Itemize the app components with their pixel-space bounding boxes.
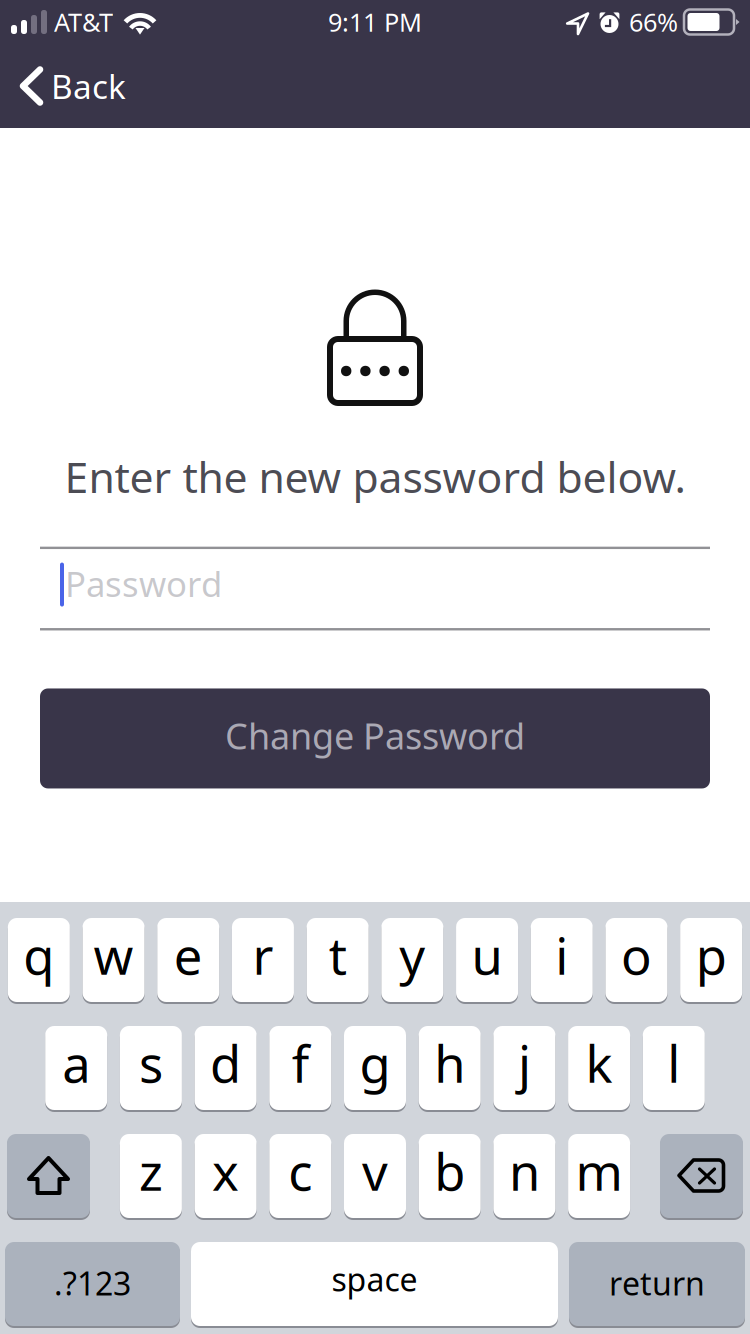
button[interactable]: z: [120, 1134, 182, 1220]
button[interactable]: space: [191, 1242, 558, 1328]
staticText: v: [362, 1137, 388, 1205]
staticText: q: [23, 921, 54, 989]
button[interactable]: i: [531, 918, 593, 1004]
staticText: AT&T: [54, 5, 113, 39]
staticText: j: [518, 1029, 531, 1097]
staticText: space: [331, 1258, 417, 1300]
button[interactable]: Shift: [7, 1134, 90, 1220]
button[interactable]: h: [419, 1026, 481, 1112]
staticText: b: [434, 1137, 465, 1205]
button[interactable]: x: [195, 1134, 257, 1220]
staticText: Change Password: [225, 712, 525, 759]
staticText: f: [292, 1029, 309, 1097]
button[interactable]: v: [344, 1134, 406, 1220]
staticText: d: [210, 1029, 241, 1097]
staticText: a: [62, 1029, 90, 1097]
button[interactable]: t: [307, 918, 369, 1004]
button[interactable]: o: [605, 918, 667, 1004]
button[interactable]: d: [195, 1026, 257, 1112]
button[interactable]: j: [493, 1026, 555, 1112]
staticText: 66%: [629, 5, 678, 39]
staticText: c: [288, 1137, 312, 1205]
button[interactable]: s: [120, 1026, 182, 1112]
staticText: t: [329, 921, 347, 989]
button[interactable]: Change Password: [40, 688, 710, 788]
button[interactable]: g: [344, 1026, 406, 1112]
staticText: 9:11 PM: [328, 5, 422, 39]
staticText: o: [621, 921, 652, 989]
staticText: u: [472, 921, 503, 989]
button[interactable]: return: [569, 1242, 745, 1328]
button[interactable]: u: [456, 918, 518, 1004]
button[interactable]: w: [83, 918, 145, 1004]
staticText: l: [667, 1029, 680, 1097]
staticText: g: [359, 1029, 390, 1097]
staticText: Enter the new password below.: [64, 448, 685, 505]
staticText: e: [174, 921, 203, 989]
button[interactable]: l: [643, 1026, 705, 1112]
staticText: w: [94, 921, 134, 989]
staticText: .?123: [54, 1262, 131, 1304]
button[interactable]: q: [8, 918, 70, 1004]
button[interactable]: a: [45, 1026, 107, 1112]
button[interactable]: e: [157, 918, 219, 1004]
staticText: k: [586, 1029, 613, 1097]
button[interactable]: Back: [0, 53, 148, 119]
button[interactable]: .?123: [5, 1242, 180, 1328]
staticText: Password: [65, 560, 222, 606]
staticText: x: [212, 1137, 239, 1205]
staticText: z: [139, 1137, 163, 1205]
button[interactable]: n: [493, 1134, 555, 1220]
button[interactable]: p: [680, 918, 742, 1004]
staticText: y: [399, 921, 425, 989]
button[interactable]: b: [419, 1134, 481, 1220]
button[interactable]: m: [568, 1134, 630, 1220]
button[interactable]: f: [269, 1026, 331, 1112]
button[interactable]: Delete: [660, 1134, 743, 1220]
button[interactable]: y: [381, 918, 443, 1004]
staticText: m: [576, 1137, 623, 1205]
staticText: return: [609, 1262, 705, 1304]
staticText: s: [139, 1029, 163, 1097]
button[interactable]: k: [568, 1026, 630, 1112]
staticText: r: [252, 921, 273, 989]
staticText: p: [696, 921, 727, 989]
button[interactable]: c: [269, 1134, 331, 1220]
button[interactable]: r: [232, 918, 294, 1004]
staticText: h: [434, 1029, 465, 1097]
staticText: n: [509, 1137, 540, 1205]
staticText: i: [555, 921, 568, 989]
staticText: Back: [51, 64, 126, 108]
